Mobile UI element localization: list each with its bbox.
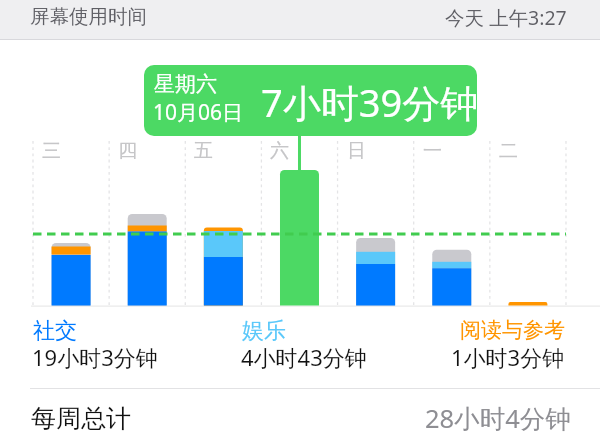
staticText: 一 [423,139,442,163]
button[interactable] [144,65,477,136]
staticText: 星期六 [154,71,217,97]
staticText: 五 [194,139,213,163]
staticText: 4小时43分钟 [241,342,367,372]
staticText: 二 [499,139,518,163]
staticText: 每周总计 [31,403,131,434]
staticText: 屏幕使用时间 [30,4,147,29]
staticText: 六 [270,139,289,163]
staticText: 娱乐 [242,317,286,345]
staticText: 10月06日 [153,98,244,127]
staticText: 日 [347,139,366,163]
staticText: 四 [118,139,137,163]
button[interactable]: 每周总计 [0,392,600,439]
staticText: 1小时3分钟 [451,342,565,372]
staticText: 今天 上午3:27 [445,4,567,31]
staticText: 三 [42,139,61,163]
staticText: 7小时39分钟 [261,76,479,128]
staticText: 阅读与参考 [460,317,565,343]
staticText: 19小时3分钟 [32,342,158,372]
staticText: 社交 [33,317,77,345]
staticText: 28小时4分钟 [425,401,571,436]
